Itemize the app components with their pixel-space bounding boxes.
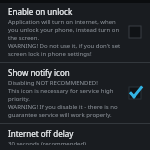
button[interactable]: Show notify icon <box>0 63 150 123</box>
staticText: Disabling NOT RECOMMENDED! This icon is … <box>8 79 122 119</box>
staticText: Application will turn on internet, when … <box>8 18 122 58</box>
button[interactable]: Internet off delay <box>0 124 150 150</box>
button[interactable]: Enable on unlock, disabled <box>124 21 146 43</box>
staticText: 30 seconds (recommended) <box>8 140 86 145</box>
staticText: Enable on unlock <box>8 6 73 17</box>
button[interactable]: Show notify icon, enabled <box>124 82 146 104</box>
staticText: Internet off delay <box>8 128 74 139</box>
button[interactable]: Enable on unlock <box>0 3 150 62</box>
staticText: Show notify icon <box>8 67 70 78</box>
